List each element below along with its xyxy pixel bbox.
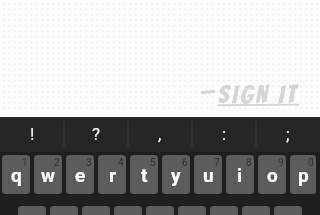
- button[interactable]: f: [114, 206, 142, 215]
- staticText: ?: [92, 124, 101, 144]
- staticText: o: [267, 164, 278, 186]
- button[interactable]: p: [290, 155, 316, 194]
- button[interactable]: l: [274, 206, 302, 215]
- button[interactable]: h: [178, 206, 206, 215]
- staticText: 2: [54, 157, 60, 169]
- staticText: p: [298, 164, 309, 186]
- staticText: 4: [118, 157, 124, 169]
- staticText: 8: [246, 157, 252, 169]
- button[interactable]: u: [194, 155, 222, 194]
- button[interactable]: s: [50, 206, 78, 215]
- staticText: 7: [214, 157, 220, 169]
- button[interactable]: y: [162, 155, 190, 194]
- staticText: q: [11, 164, 22, 186]
- staticText: !: [30, 124, 35, 144]
- button[interactable]: ;: [256, 117, 320, 150]
- staticText: i: [237, 164, 243, 186]
- staticText: e: [75, 164, 86, 186]
- staticText: 5: [150, 157, 156, 169]
- button[interactable]: j: [210, 206, 238, 215]
- button[interactable]: i: [226, 155, 254, 194]
- staticText: t: [141, 164, 148, 186]
- button[interactable]: w: [34, 155, 62, 194]
- staticText: ,: [158, 124, 162, 144]
- staticText: SIGN IT: [218, 81, 299, 108]
- button[interactable]: a: [18, 206, 46, 215]
- staticText: :: [222, 124, 227, 144]
- staticText: y: [171, 164, 181, 186]
- button[interactable]: g: [146, 206, 174, 215]
- button[interactable]: !: [0, 117, 64, 150]
- staticText: 6: [182, 157, 188, 169]
- button[interactable]: ,: [128, 117, 192, 150]
- button[interactable]: ?: [64, 117, 128, 150]
- button[interactable]: t: [130, 155, 158, 194]
- staticText: 9: [278, 157, 284, 169]
- staticText: r: [109, 164, 116, 186]
- staticText: u: [203, 164, 214, 186]
- button[interactable]: d: [82, 206, 110, 215]
- staticText: 3: [86, 157, 92, 169]
- button[interactable]: q: [2, 155, 30, 194]
- button[interactable]: :: [192, 117, 256, 150]
- button[interactable]: e: [66, 155, 94, 194]
- staticText: 1: [22, 157, 28, 169]
- button[interactable]: o: [258, 155, 286, 194]
- staticText: ;: [286, 124, 290, 144]
- button[interactable]: r: [98, 155, 126, 194]
- button[interactable]: k: [242, 206, 270, 215]
- staticText: 0: [308, 157, 314, 169]
- staticText: w: [41, 164, 55, 186]
